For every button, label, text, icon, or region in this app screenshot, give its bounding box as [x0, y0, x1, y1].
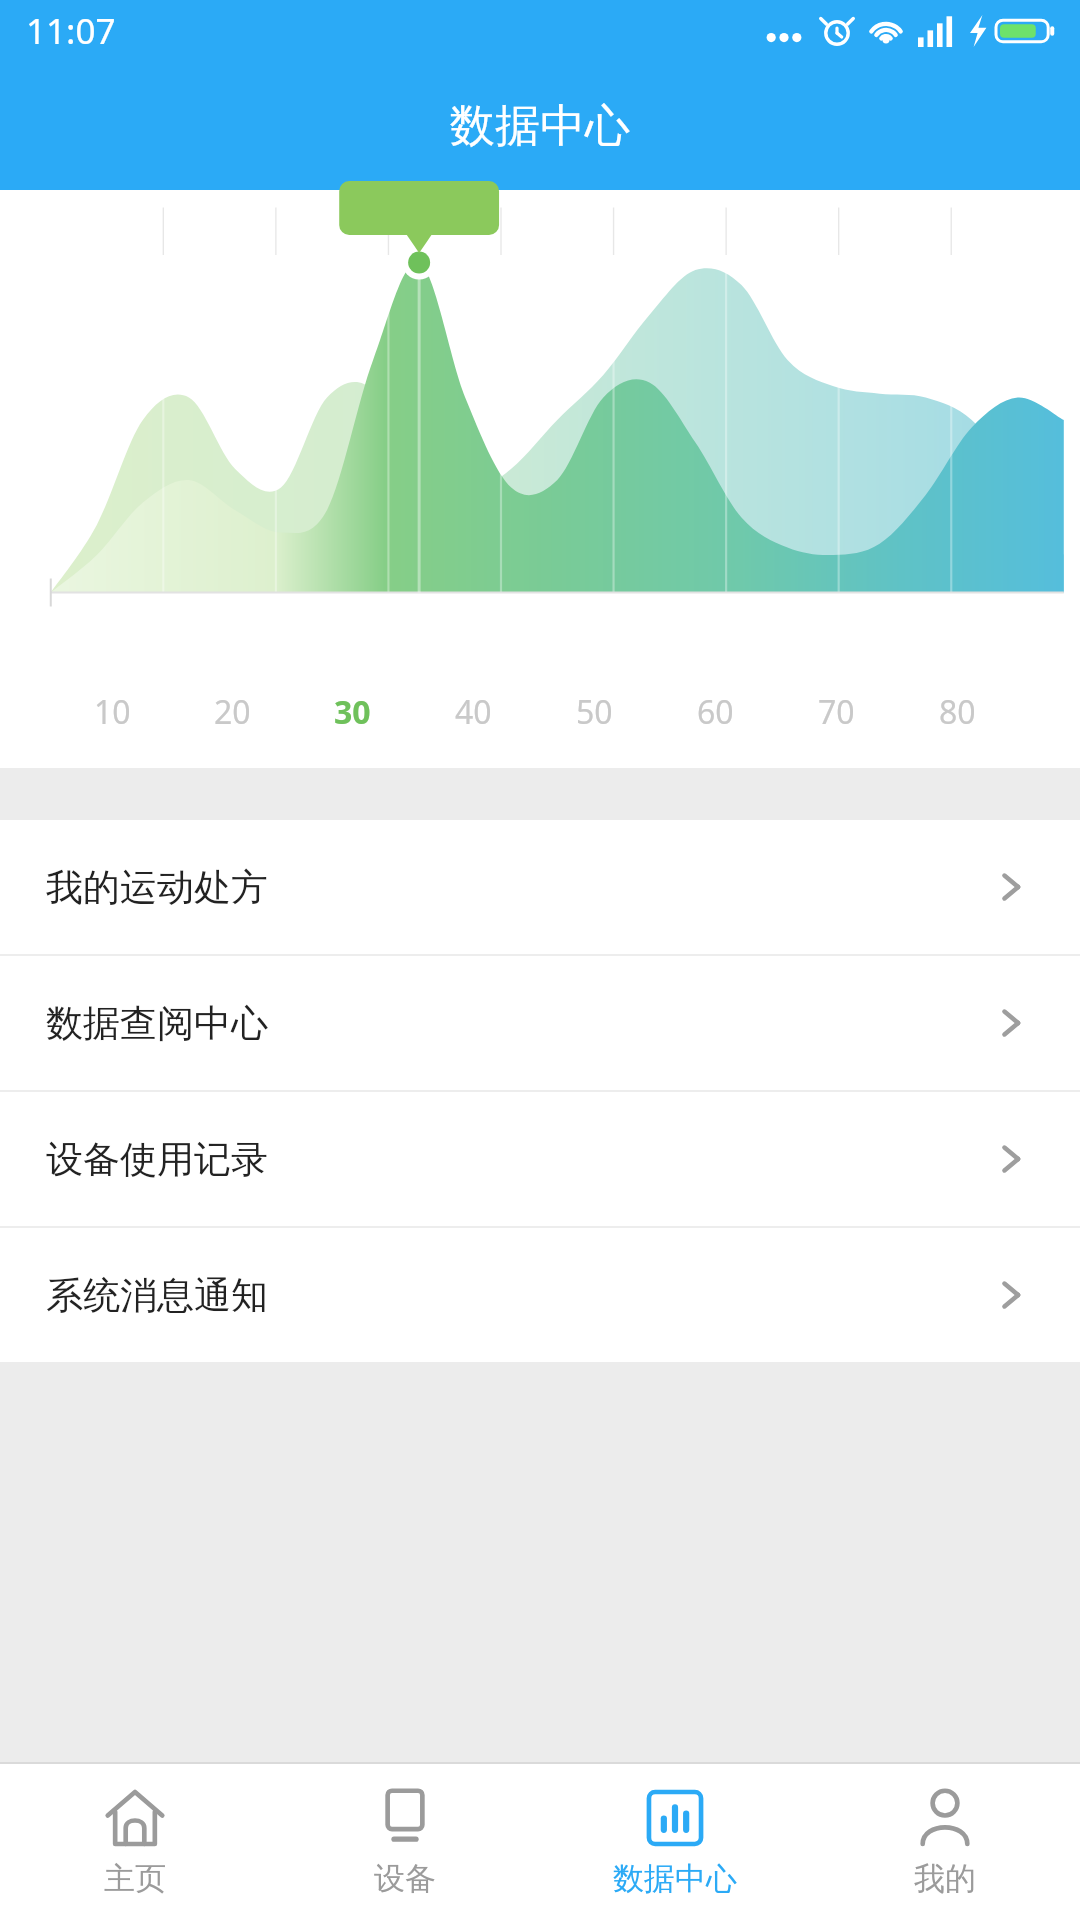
- staticText: 20: [214, 690, 251, 734]
- staticText: 10: [94, 690, 131, 734]
- staticText: 60: [697, 690, 734, 734]
- staticText: 我的: [914, 1859, 976, 1898]
- button[interactable]: 我的: [810, 1764, 1080, 1920]
- staticText: 30: [334, 690, 371, 734]
- staticText: 50: [576, 690, 613, 734]
- button[interactable]: 设备使用记录: [0, 1092, 1080, 1226]
- staticText: 设备使用记录: [46, 1136, 268, 1183]
- button[interactable]: 主页: [0, 1764, 270, 1920]
- staticText: 系统消息通知: [46, 1272, 268, 1319]
- staticText: 数据中心: [450, 98, 630, 155]
- staticText: 40: [455, 690, 492, 734]
- staticText: 数据查阅中心: [46, 1000, 268, 1047]
- staticText: 70: [818, 690, 855, 734]
- staticText: 设备: [374, 1859, 436, 1898]
- staticText: 我的运动处方: [46, 864, 268, 911]
- button[interactable]: 我的运动处方: [0, 820, 1080, 954]
- button[interactable]: 数据查阅中心: [0, 956, 1080, 1090]
- button[interactable]: 系统消息通知: [0, 1228, 1080, 1362]
- button[interactable]: 数据中心: [540, 1764, 810, 1920]
- button[interactable]: 设备: [270, 1764, 540, 1920]
- staticText: 主页: [104, 1859, 166, 1898]
- staticText: 11:07: [26, 7, 116, 55]
- staticText: 80: [939, 690, 976, 734]
- staticText: 数据中心: [613, 1859, 737, 1898]
